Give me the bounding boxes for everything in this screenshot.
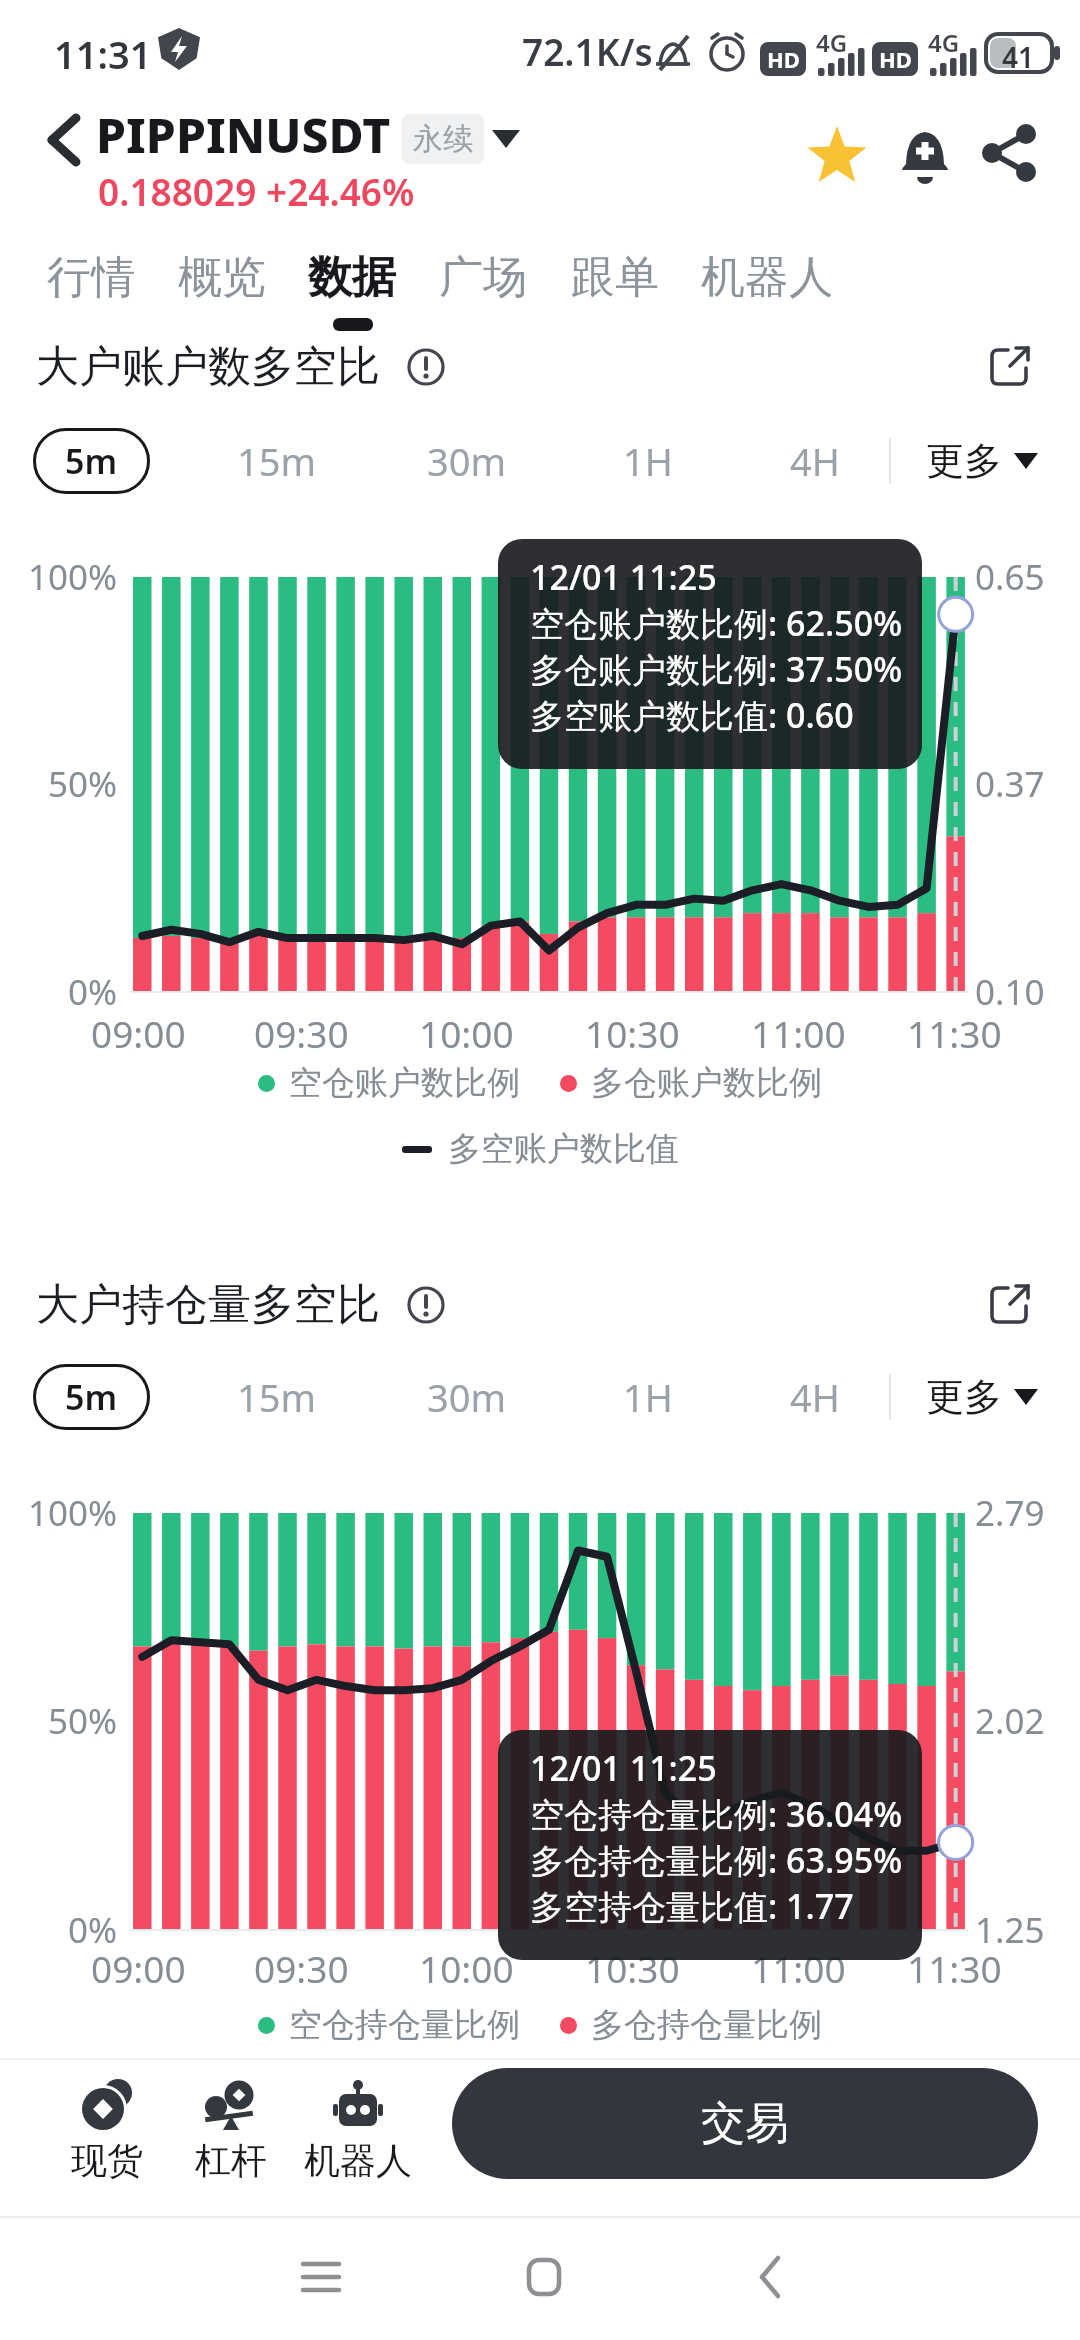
staticText: 现货 — [71, 2138, 143, 2183]
staticText: 机器人 — [304, 2138, 412, 2183]
staticText: 空仓账户数比例: 62.50% — [530, 600, 903, 646]
staticText: 0.37 — [975, 760, 1045, 808]
staticText: 数据 — [308, 250, 396, 305]
staticText: 多空持仓量比值: 1.77 — [530, 1883, 854, 1929]
staticText: 0.10 — [975, 968, 1045, 1016]
staticText: 11:00 — [751, 1943, 846, 1993]
button[interactable]: 30m — [397, 428, 537, 494]
button[interactable]: 5m — [33, 428, 150, 494]
staticText: 100% — [28, 553, 118, 601]
staticText: 机器人 — [701, 250, 833, 305]
staticText: 0% — [68, 968, 118, 1016]
staticText: 更多 — [926, 437, 1002, 485]
button[interactable]: 4H — [745, 428, 885, 494]
staticText: 09:00 — [91, 1008, 186, 1058]
staticText: HD — [767, 44, 800, 74]
button[interactable] — [288, 2244, 354, 2310]
staticText: 15m — [237, 435, 317, 487]
staticText: 50% — [48, 760, 118, 808]
staticText: 跟单 — [571, 250, 659, 305]
staticText: 10:00 — [419, 1943, 514, 1993]
button[interactable] — [986, 1280, 1038, 1332]
staticText: 50% — [48, 1697, 118, 1745]
button[interactable]: 1H — [578, 428, 718, 494]
button[interactable] — [986, 342, 1038, 394]
staticText: 行情 — [47, 250, 135, 305]
button[interactable]: 概览 — [178, 250, 266, 305]
button[interactable]: 广场 — [439, 250, 527, 305]
staticText: 大户持仓量多空比 — [36, 1278, 380, 1332]
staticText: 5m — [65, 438, 118, 484]
button[interactable]: 1H — [578, 1364, 718, 1430]
button[interactable]: 4H — [745, 1364, 885, 1430]
button[interactable]: 行情 — [47, 250, 135, 305]
button[interactable]: 更多 — [912, 428, 1052, 494]
button[interactable] — [898, 124, 956, 182]
staticText: 4H — [790, 435, 840, 487]
staticText: 100% — [28, 1489, 118, 1537]
button[interactable]: 5m — [33, 1364, 150, 1430]
button[interactable]: 机器人 — [701, 250, 833, 305]
button[interactable]: 现货 — [62, 2080, 152, 2200]
staticText: 09:30 — [254, 1943, 349, 1993]
staticText: 概览 — [178, 250, 266, 305]
staticText: 1H — [623, 1371, 673, 1423]
staticText: PIPPINUSDT — [96, 102, 391, 167]
staticText: 多仓账户数比例: 37.50% — [530, 646, 903, 692]
staticText: 09:30 — [254, 1008, 349, 1058]
staticText: 多空账户数比值 — [448, 1128, 679, 1170]
button[interactable]: 杠杆 — [186, 2080, 276, 2200]
staticText: 72.1K/s — [522, 26, 653, 76]
staticText: 永续 — [413, 120, 473, 158]
staticText: 0.65 — [975, 553, 1045, 601]
staticText: 09:00 — [91, 1943, 186, 1993]
staticText: 2.02 — [975, 1697, 1045, 1745]
button[interactable]: 更多 — [912, 1364, 1052, 1430]
staticText: 1.25 — [975, 1906, 1045, 1954]
staticText: 4G — [928, 26, 960, 59]
staticText: 5m — [65, 1374, 118, 1420]
staticText: 多空账户数比值: 0.60 — [530, 692, 854, 738]
staticText: 多仓持仓量比例: 63.95% — [530, 1837, 903, 1883]
staticText: 12/01 11:25 — [530, 1745, 717, 1791]
staticText: HD — [879, 44, 912, 74]
staticText: 空仓持仓量比例: 36.04% — [530, 1791, 903, 1837]
button[interactable]: 15m — [207, 1364, 347, 1430]
staticText: 广场 — [439, 250, 527, 305]
staticText: 10:30 — [585, 1008, 680, 1058]
staticText: 11:31 — [54, 28, 152, 80]
button[interactable] — [982, 126, 1038, 182]
button[interactable]: 机器人 — [300, 2080, 416, 2200]
button[interactable] — [36, 110, 96, 170]
staticText: 空仓持仓量比例 — [289, 2004, 520, 2046]
button[interactable] — [511, 2244, 577, 2310]
button[interactable]: 30m — [397, 1364, 537, 1430]
button[interactable]: 交易 — [452, 2068, 1038, 2179]
staticText: 11:30 — [907, 1943, 1002, 1993]
staticText: 2.79 — [975, 1489, 1045, 1537]
staticText: 1H — [623, 435, 673, 487]
button[interactable]: 数据 — [308, 250, 396, 305]
button[interactable]: 永续 — [402, 114, 484, 164]
staticText: 多仓持仓量比例 — [591, 2004, 822, 2046]
staticText: 交易 — [701, 2096, 789, 2151]
staticText: 41 — [1002, 38, 1035, 76]
staticText: 11:00 — [751, 1008, 846, 1058]
staticText: 大户账户数多空比 — [36, 340, 380, 394]
staticText: 空仓账户数比例 — [289, 1062, 520, 1104]
staticText: 更多 — [926, 1373, 1002, 1421]
staticText: 杠杆 — [195, 2138, 267, 2183]
staticText: 12/01 11:25 — [530, 554, 717, 600]
staticText: 4G — [816, 26, 848, 59]
button[interactable] — [806, 124, 868, 186]
staticText: 4H — [790, 1371, 840, 1423]
staticText: 15m — [237, 1371, 317, 1423]
button[interactable]: 跟单 — [571, 250, 659, 305]
staticText: 多仓账户数比例 — [591, 1062, 822, 1104]
staticText: 30m — [427, 435, 507, 487]
staticText: 10:00 — [419, 1008, 514, 1058]
button[interactable] — [737, 2244, 803, 2310]
button[interactable]: 15m — [207, 428, 347, 494]
staticText: 30m — [427, 1371, 507, 1423]
staticText: 0.188029 +24.46% — [98, 166, 415, 216]
